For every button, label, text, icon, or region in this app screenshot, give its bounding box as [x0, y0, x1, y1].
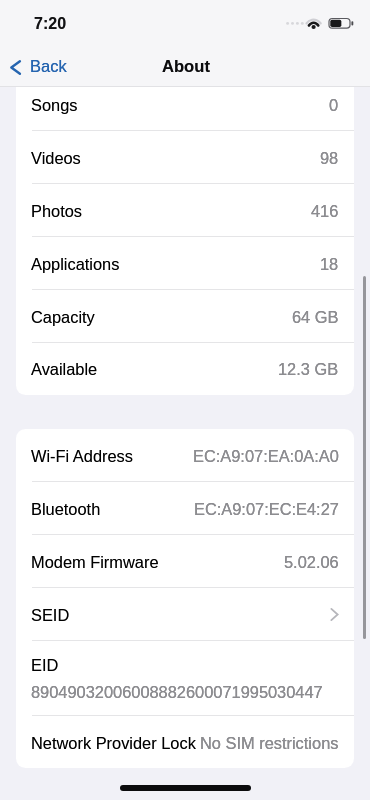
staticText: 98 [320, 149, 339, 167]
staticText: 5.02.06 [284, 553, 339, 571]
staticText: 12.3 GB [278, 360, 339, 378]
staticText: Bluetooth [31, 500, 101, 518]
button[interactable]: Capacity [16, 290, 354, 343]
staticText: Back [30, 57, 67, 75]
staticText: Applications [31, 255, 120, 273]
button[interactable]: EID [16, 641, 354, 716]
staticText: 5.02.06 [284, 553, 339, 571]
staticText: Capacity [31, 308, 95, 326]
button[interactable]: Songs [16, 78, 354, 131]
staticText: 0 [329, 96, 339, 114]
staticText: SEID [31, 606, 70, 624]
staticText: 416 [311, 202, 339, 220]
button[interactable]: Back [0, 53, 78, 81]
staticText: Bluetooth [31, 500, 101, 518]
staticText: EC:A9:07:EA:0A:A0 [193, 447, 339, 465]
staticText: Photos [31, 202, 83, 220]
staticText: Songs [31, 96, 78, 114]
staticText: EC:A9:07:EC:E4:27 [194, 500, 339, 518]
staticText: EC:A9:07:EC:E4:27 [194, 500, 339, 518]
staticText: Photos [31, 202, 83, 220]
staticText: 7:20 [34, 15, 67, 33]
staticText: Back [30, 57, 67, 75]
staticText: No SIM restrictions [200, 734, 339, 752]
staticText: 7:20 [34, 15, 67, 33]
staticText: About [162, 57, 210, 76]
staticText: SEID [31, 606, 70, 624]
staticText: No SIM restrictions [200, 734, 339, 752]
staticText: 89049032006008882600071995030447 [31, 683, 323, 701]
staticText: 18 [320, 255, 339, 273]
other: Back [10, 60, 21, 75]
button[interactable]: Wi-Fi Address [16, 429, 354, 482]
button[interactable]: Modem Firmware [16, 535, 354, 588]
staticText: About [162, 57, 210, 76]
staticText: Modem Firmware [31, 553, 159, 571]
staticText: EID [31, 656, 59, 674]
button[interactable]: Videos [16, 131, 354, 184]
staticText: Available [31, 360, 98, 378]
staticText: Videos [31, 149, 81, 167]
button[interactable]: Network Provider Lock [16, 716, 354, 768]
staticText: EID [31, 656, 59, 674]
staticText: Network Provider Lock [31, 734, 196, 752]
staticText: Songs [31, 96, 78, 114]
button[interactable]: Applications [16, 237, 354, 290]
staticText: 98 [320, 149, 339, 167]
staticText: Wi-Fi Address [31, 447, 134, 465]
staticText: 64 GB [292, 308, 339, 326]
staticText: Modem Firmware [31, 553, 159, 571]
staticText: 12.3 GB [278, 360, 339, 378]
staticText: 18 [320, 255, 339, 273]
staticText: 64 GB [292, 308, 339, 326]
staticText: Videos [31, 149, 81, 167]
button[interactable]: Available [16, 343, 354, 395]
staticText: Wi-Fi Address [31, 447, 134, 465]
staticText: Capacity [31, 308, 95, 326]
staticText: Network Provider Lock [31, 734, 196, 752]
staticText: 89049032006008882600071995030447 [31, 683, 323, 701]
staticText: EC:A9:07:EA:0A:A0 [193, 447, 339, 465]
staticText: 416 [311, 202, 339, 220]
staticText: Available [31, 360, 98, 378]
staticText: Applications [31, 255, 120, 273]
button[interactable]: Photos [16, 184, 354, 237]
button[interactable]: SEID [16, 588, 354, 641]
staticText: 0 [329, 96, 339, 114]
button[interactable]: Bluetooth [16, 482, 354, 535]
